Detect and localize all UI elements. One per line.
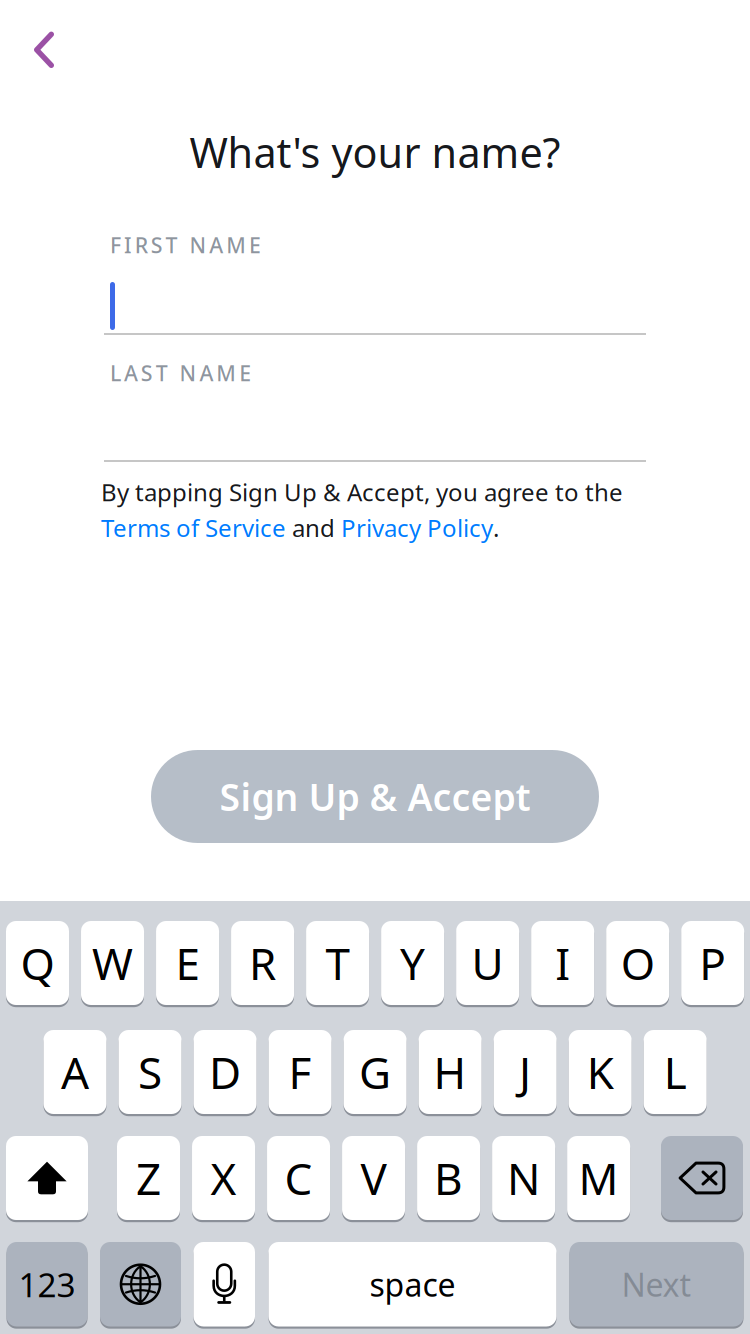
staticText: F [289, 1043, 312, 1101]
button[interactable]: A [43, 1030, 106, 1114]
button[interactable]: Sign Up & Accept [151, 750, 599, 843]
staticText: N [179, 359, 196, 387]
button[interactable]: Z [117, 1136, 180, 1220]
button[interactable]: I [531, 921, 594, 1005]
staticText: E [175, 934, 199, 992]
staticText: E [249, 231, 261, 259]
staticText: G [359, 1043, 391, 1101]
staticText: C [284, 1149, 312, 1207]
staticText: N [507, 1149, 540, 1207]
button[interactable]: Next [569, 1242, 743, 1326]
staticText: F [110, 231, 121, 259]
staticText: Privacy Policy [341, 512, 493, 544]
staticText: T [166, 231, 178, 259]
button[interactable]: E [156, 921, 219, 1005]
button[interactable]: Terms of Service [101, 512, 286, 544]
staticText: E [239, 359, 251, 387]
staticText: K [587, 1043, 614, 1101]
button[interactable]: W [81, 921, 144, 1005]
button[interactable]: N [492, 1136, 555, 1220]
staticText: space [369, 1263, 455, 1305]
staticText: 123 [18, 1262, 75, 1306]
button[interactable]: B [417, 1136, 480, 1220]
staticText: By tapping Sign Up & Accept, you agree t… [101, 476, 623, 508]
button[interactable]: Shift [6, 1136, 88, 1220]
button[interactable]: L [644, 1030, 707, 1114]
staticText: S [138, 1043, 162, 1101]
staticText: P [699, 934, 726, 992]
staticText: B [434, 1149, 463, 1207]
button[interactable]: V [342, 1136, 405, 1220]
staticText: A [199, 359, 213, 387]
button[interactable]: Q [6, 921, 69, 1005]
button[interactable]: K [569, 1030, 632, 1114]
staticText: O [621, 934, 655, 992]
staticText: H [434, 1043, 467, 1101]
button[interactable]: F [269, 1030, 332, 1114]
staticText: V [361, 1149, 387, 1207]
staticText: R [249, 934, 276, 992]
staticText: Next [621, 1263, 691, 1305]
button[interactable]: Back [34, 32, 54, 68]
staticText: L [664, 1043, 687, 1101]
staticText: R [135, 231, 148, 259]
button[interactable]: Y [381, 921, 444, 1005]
button[interactable]: space [268, 1242, 556, 1326]
staticText: W [92, 934, 133, 992]
staticText: L [110, 359, 121, 387]
staticText: U [472, 934, 504, 992]
staticText: A [209, 231, 223, 259]
staticText: Y [400, 934, 425, 992]
staticText: M [226, 231, 246, 259]
staticText: and [286, 512, 341, 544]
button[interactable]: Delete [661, 1136, 743, 1220]
staticText: A [124, 359, 138, 387]
button[interactable]: S [118, 1030, 181, 1114]
staticText: S [141, 359, 153, 387]
button[interactable]: C [267, 1136, 330, 1220]
button[interactable]: R [231, 921, 294, 1005]
staticText: A [61, 1043, 89, 1101]
button[interactable]: Next keyboard [100, 1242, 181, 1326]
staticText: . [493, 512, 499, 544]
staticText: J [519, 1043, 531, 1101]
button[interactable]: M [567, 1136, 630, 1220]
button[interactable]: 123 [6, 1242, 87, 1326]
button[interactable]: X [192, 1136, 255, 1220]
staticText: M [579, 1149, 619, 1207]
staticText: I [555, 934, 570, 992]
staticText: S [151, 231, 163, 259]
staticText: M [216, 359, 236, 387]
staticText: Q [20, 934, 54, 992]
staticText: I [124, 231, 132, 259]
button[interactable]: D [193, 1030, 256, 1114]
staticText: D [209, 1043, 241, 1101]
button[interactable]: Dictate [193, 1242, 255, 1326]
staticText: N [189, 231, 206, 259]
staticText: T [156, 359, 168, 387]
button[interactable]: O [606, 921, 669, 1005]
button[interactable]: Privacy Policy [341, 512, 493, 544]
staticText: Terms of Service [101, 512, 286, 544]
button[interactable]: G [344, 1030, 407, 1114]
button[interactable]: U [456, 921, 519, 1005]
staticText: X [210, 1149, 236, 1207]
staticText: Sign Up & Accept [219, 772, 530, 821]
button[interactable]: H [419, 1030, 482, 1114]
staticText: Z [136, 1149, 161, 1207]
button[interactable]: P [681, 921, 744, 1005]
staticText: What's your name? [189, 125, 560, 179]
staticText: T [326, 934, 350, 992]
button[interactable]: J [494, 1030, 557, 1114]
button[interactable]: T [306, 921, 369, 1005]
